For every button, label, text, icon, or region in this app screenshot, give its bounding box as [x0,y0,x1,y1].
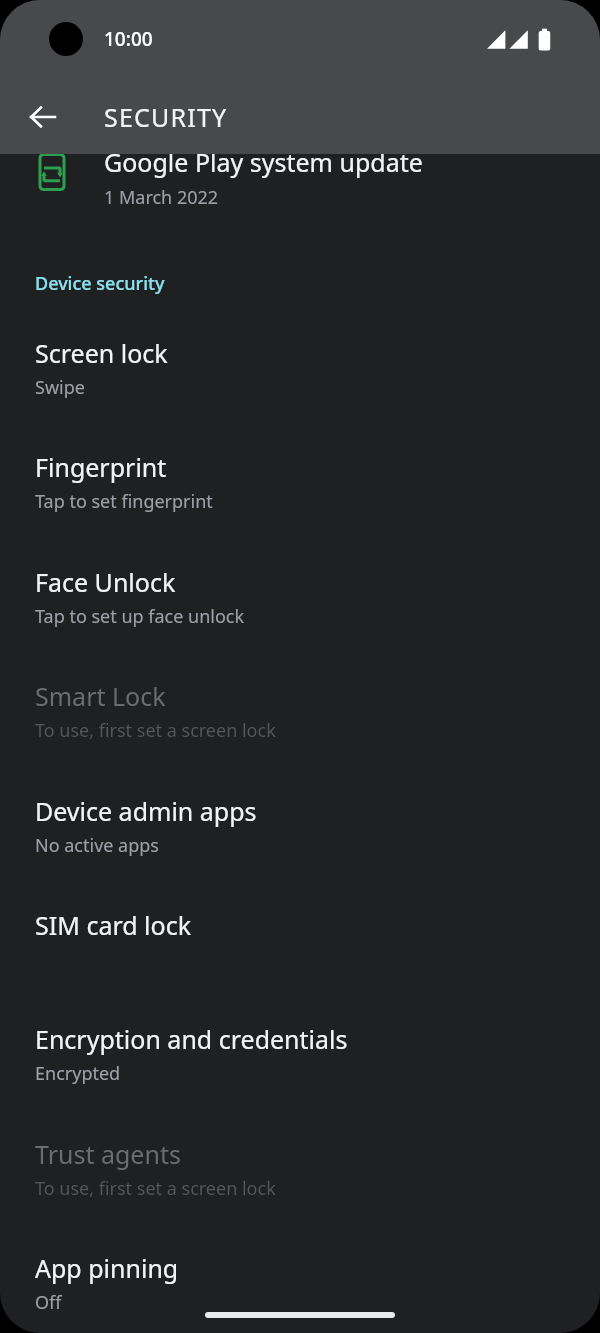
staticText: Encrypted [35,1061,121,1086]
staticText: Tap to set up face unlock [35,604,245,629]
button[interactable]: Trust agents [0,1121,600,1225]
button[interactable]: Encryption and credentials [0,1006,600,1110]
button[interactable]: Fingerprint [0,434,600,538]
staticText: Tap to set fingerprint [35,489,213,514]
button[interactable]: SIM card lock [0,892,600,996]
staticText: Off [35,1290,62,1315]
button[interactable]: Screen lock [0,320,600,424]
staticText: To use, first set a screen lock [35,1176,276,1201]
button[interactable]: Google Play system update [0,128,600,228]
button[interactable]: Back [15,89,71,145]
staticText: Swipe [35,375,85,400]
staticText: SECURITY [104,100,228,134]
staticText: Device admin apps [35,794,257,828]
staticText: Fingerprint [35,450,167,484]
button[interactable]: Device admin apps [0,778,600,882]
staticText: Encryption and credentials [35,1022,348,1056]
staticText: Screen lock [35,336,168,370]
staticText: Face Unlock [35,565,176,599]
staticText: 10:00 [104,26,153,52]
button[interactable]: Smart Lock [0,663,600,767]
staticText: Smart Lock [35,679,166,713]
staticText: SIM card lock [35,908,192,942]
button[interactable]: Face Unlock [0,549,600,653]
button[interactable]: App pinning [0,1235,600,1333]
staticText: App pinning [35,1251,179,1285]
staticText: No active apps [35,833,159,858]
staticText: To use, first set a screen lock [35,718,276,743]
staticText: 1 March 2022 [104,185,219,210]
staticText: Device security [35,271,165,296]
staticText: Google Play system update [104,145,423,179]
staticText: Trust agents [35,1137,181,1171]
